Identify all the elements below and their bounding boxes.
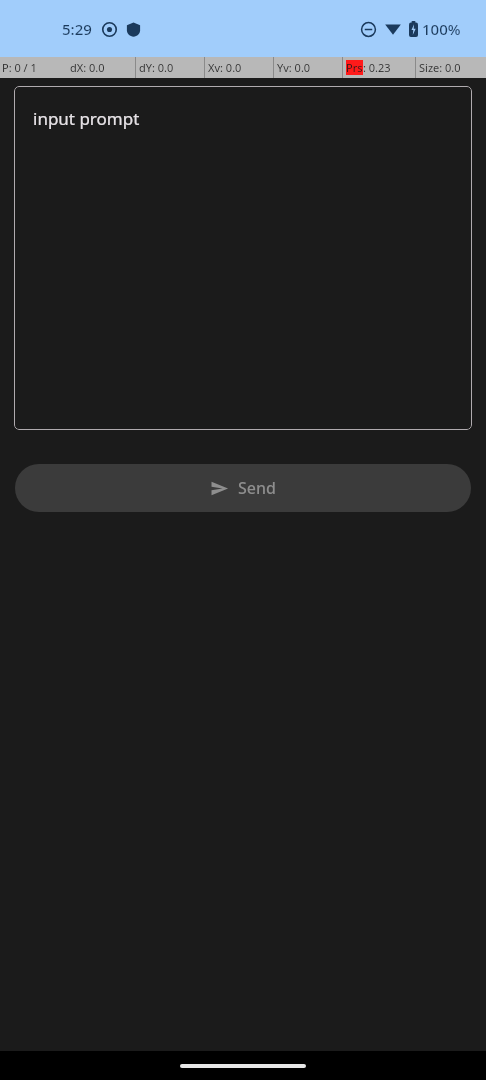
staticText: Size: 0.0 (419, 60, 461, 75)
staticText: dY: 0.0 (139, 60, 174, 75)
staticText: P: 0 / 1 (2, 60, 37, 75)
button[interactable]: input prompt (14, 86, 472, 430)
staticText: input prompt (33, 107, 140, 130)
button[interactable]: Send (15, 464, 471, 512)
staticText: : 0.23 (363, 60, 391, 75)
staticText: Prs (346, 60, 363, 75)
staticText: Xv: 0.0 (208, 60, 242, 75)
staticText: 100% (422, 19, 461, 39)
staticText: dX: 0.0 (70, 60, 105, 75)
staticText: Yv: 0.0 (277, 60, 311, 75)
staticText: 5:29 (62, 19, 92, 39)
staticText: Send (238, 477, 276, 499)
